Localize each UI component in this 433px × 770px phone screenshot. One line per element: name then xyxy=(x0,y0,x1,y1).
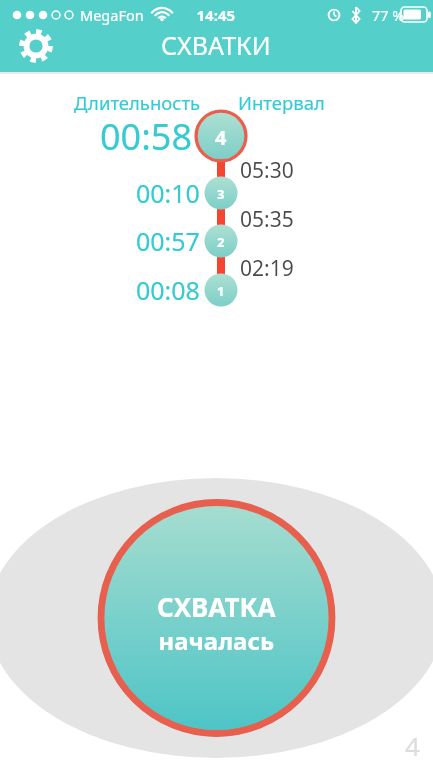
button[interactable]: Схватка началась — stop contraction xyxy=(98,500,335,737)
button[interactable]: Settings xyxy=(12,22,60,70)
